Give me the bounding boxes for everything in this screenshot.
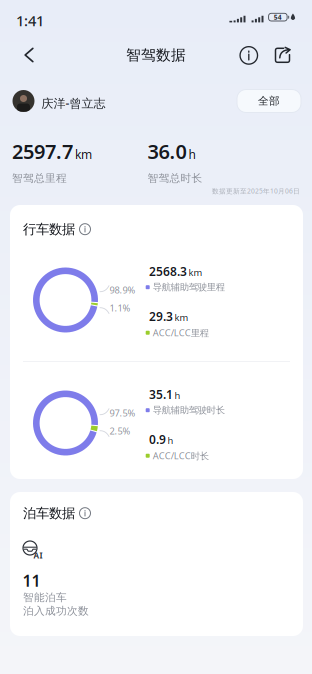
button[interactable]: Back bbox=[14, 41, 44, 69]
staticText: 11 bbox=[22, 570, 40, 591]
staticText: 98.9% bbox=[109, 284, 135, 296]
staticText: h bbox=[167, 434, 173, 447]
button[interactable]: Share bbox=[269, 41, 297, 69]
button[interactable]: Info bbox=[235, 41, 263, 69]
staticText: 泊车数据 bbox=[23, 505, 75, 521]
staticText: AI bbox=[33, 550, 42, 561]
staticText: 2597.7 bbox=[12, 138, 73, 165]
staticText: 全部 bbox=[258, 94, 280, 107]
staticText: 行车数据 bbox=[23, 221, 75, 237]
staticText: 1.1% bbox=[109, 302, 130, 314]
staticText: km bbox=[75, 146, 92, 162]
staticText: h bbox=[188, 146, 195, 162]
staticText: 29.3 bbox=[149, 308, 173, 324]
staticText: h bbox=[174, 389, 180, 402]
button[interactable]: 全部 bbox=[237, 89, 301, 112]
staticText: 智驾总里程 bbox=[12, 172, 67, 185]
staticText: 1:41 bbox=[16, 11, 44, 30]
staticText: 数据更新至2025年10月06日 bbox=[212, 187, 300, 195]
staticText: 35.1 bbox=[149, 386, 173, 402]
staticText: ACC/LCC里程 bbox=[153, 326, 209, 339]
staticText: 智驾总时长 bbox=[147, 172, 202, 185]
staticText: 泊入成功次数 bbox=[23, 604, 89, 618]
staticText: 36.0 bbox=[147, 138, 186, 165]
staticText: 导航辅助驾驶时长 bbox=[153, 404, 225, 416]
staticText: 导航辅助驾驶里程 bbox=[153, 281, 225, 293]
button[interactable]: About 行车数据 bbox=[79, 224, 90, 235]
staticText: 0.9 bbox=[149, 431, 166, 447]
staticText: 智能泊车 bbox=[23, 591, 67, 604]
staticText: 2568.3 bbox=[149, 263, 187, 279]
staticText: ACC/LCC时长 bbox=[153, 449, 209, 462]
staticText: km bbox=[174, 311, 188, 324]
staticText: 2.5% bbox=[109, 425, 130, 437]
staticText: 54 bbox=[274, 13, 282, 22]
staticText: 智驾数据 bbox=[126, 46, 186, 64]
staticText: 97.5% bbox=[109, 407, 135, 419]
staticText: 庆洋-曾立志 bbox=[41, 95, 105, 111]
staticText: km bbox=[188, 266, 202, 279]
button[interactable]: About 泊车数据 bbox=[79, 508, 90, 519]
